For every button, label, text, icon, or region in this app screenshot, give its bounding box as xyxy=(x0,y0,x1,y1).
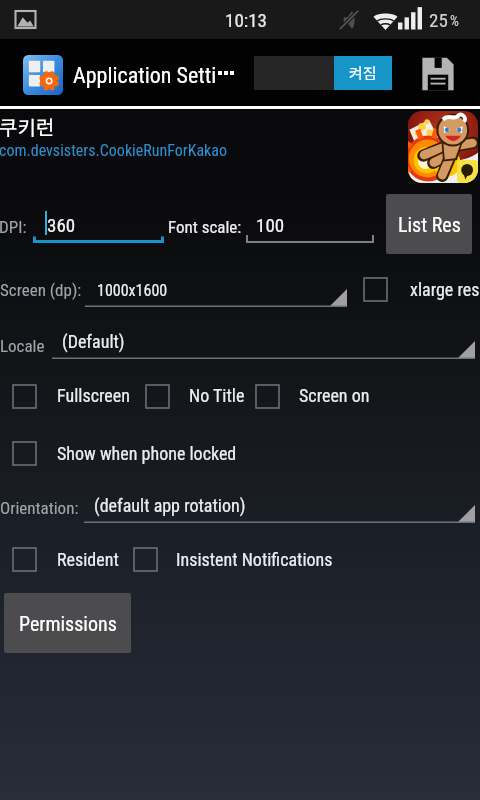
staticText: Permissions xyxy=(19,612,117,635)
staticText: 360 xyxy=(47,214,76,236)
button[interactable]: 1000x1600 xyxy=(85,281,347,309)
button[interactable]: Checkbox xyxy=(6,378,43,415)
button[interactable]: 켜짐 xyxy=(254,56,392,90)
staticText: Show when phone locked xyxy=(57,443,237,464)
staticText: 100 xyxy=(256,214,285,236)
button[interactable]: Checkbox xyxy=(357,271,394,308)
staticText: Orientation: xyxy=(0,498,79,518)
button[interactable]: Checkbox xyxy=(6,541,43,578)
button[interactable]: Save xyxy=(421,57,455,91)
staticText: List Res xyxy=(398,213,461,236)
button[interactable]: List Res xyxy=(386,194,472,254)
button[interactable]: Permissions xyxy=(4,593,131,653)
button[interactable]: (Default) xyxy=(52,331,475,361)
staticText: (default app rotation) xyxy=(94,495,246,516)
staticText: Resident xyxy=(57,549,119,570)
staticText: No Title xyxy=(189,385,245,406)
staticText: 1000x1600 xyxy=(97,281,168,300)
staticText: (Default) xyxy=(62,331,125,352)
staticText: % xyxy=(450,13,459,29)
button[interactable]: Checkbox xyxy=(249,378,286,415)
staticText: 켜짐 xyxy=(349,62,377,84)
button[interactable]: Checkbox xyxy=(139,378,176,415)
staticText: 25 xyxy=(429,9,448,31)
staticText: Screen (dp): xyxy=(0,280,82,300)
staticText: 쿠키런 xyxy=(0,112,55,141)
staticText: xlarge res xyxy=(410,279,480,300)
staticText: 10:13 xyxy=(225,9,267,31)
button[interactable]: Checkbox xyxy=(6,435,43,472)
staticText: Application Setti xyxy=(73,63,217,89)
staticText: com.devsisters.CookieRunForKakao xyxy=(0,141,227,160)
staticText: Screen on xyxy=(299,385,370,406)
button[interactable]: 360 xyxy=(33,212,164,242)
staticText: Font scale: xyxy=(168,217,242,237)
button[interactable]: (default app rotation) xyxy=(84,495,475,525)
button[interactable]: Checkbox xyxy=(127,541,164,578)
staticText: Locale xyxy=(0,336,45,356)
staticText: DPI: xyxy=(0,217,27,237)
staticText: Fullscreen xyxy=(57,385,130,406)
staticText: Insistent Notifications xyxy=(176,549,333,570)
